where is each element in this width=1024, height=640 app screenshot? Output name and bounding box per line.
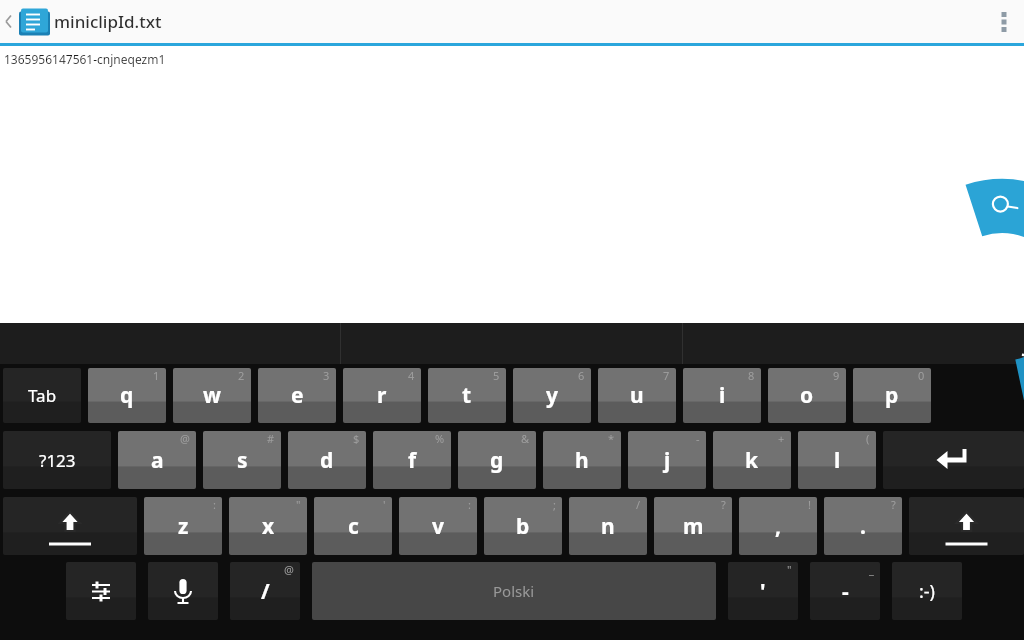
button[interactable]: 0 [853,368,931,423]
staticText: : [213,497,216,512]
staticText: m [683,512,704,541]
button[interactable]: ? [654,497,732,555]
button[interactable] [683,323,1024,364]
button[interactable]: Polski [312,562,716,620]
staticText: i [719,381,726,410]
button[interactable]: ' [314,497,392,555]
button[interactable]: : [399,497,477,555]
button[interactable]: 1 [88,368,166,423]
staticText: @ [284,562,294,577]
button[interactable]: Keyboard settings [66,562,136,620]
staticText: 1365956147561-cnjneqezm1 [4,51,166,67]
staticText: z [178,512,189,541]
staticText: " [787,562,792,577]
staticText: ? [721,497,726,512]
button[interactable]: ? [824,497,902,555]
staticText: :-) [919,579,936,604]
button[interactable]: Tab [3,368,81,423]
button[interactable]: " [229,497,307,555]
staticText: n [601,512,615,541]
button[interactable]: 6 [513,368,591,423]
staticText: $ [353,431,360,446]
staticText: c [348,512,359,541]
button[interactable]: : [144,497,222,555]
button[interactable]: 8 [683,368,761,423]
button[interactable]: 4 [343,368,421,423]
staticText: & [521,431,530,446]
staticText: + [778,431,785,446]
button[interactable]: ( [798,431,876,489]
staticText: . [860,512,866,541]
button[interactable]: 2 [173,368,251,423]
staticText: g [490,446,504,475]
staticText: j [664,446,671,475]
staticText: o [800,381,814,410]
button[interactable]: ?123 [3,431,111,489]
staticText: 0 [918,368,925,383]
button[interactable]: ; [484,497,562,555]
button[interactable]: Voice input [148,562,218,620]
button[interactable]: ! [739,497,817,555]
staticText: d [320,446,334,475]
button[interactable]: Enter [883,431,1024,489]
staticText: Tab [28,384,57,407]
staticText: miniclipId.txt [54,10,162,33]
staticText: r [377,381,387,410]
button[interactable]: More options [984,0,1024,43]
staticText: l [834,446,841,475]
staticText: k [745,446,759,475]
staticText: y [546,381,558,410]
button[interactable]: 9 [768,368,846,423]
staticText: h [575,446,589,475]
button[interactable]: @ [118,431,196,489]
button[interactable]: Navigate up [0,0,54,43]
staticText: ! [808,497,811,512]
button[interactable]: _ [810,562,880,620]
staticText: ' [383,497,386,512]
button[interactable]: 5 [428,368,506,423]
staticText: # [267,431,275,446]
button[interactable]: " [728,562,798,620]
staticText: @ [180,431,190,446]
staticText: ? [891,497,896,512]
staticText: ?123 [39,449,76,472]
button[interactable]: 7 [598,368,676,423]
staticText: t [462,381,472,410]
button[interactable]: * [543,431,621,489]
staticText: f [408,446,417,475]
staticText: ' [760,577,766,606]
button[interactable]: Shift [909,497,1024,555]
staticText: ; [553,497,556,512]
staticText: u [630,381,644,410]
staticText: Polski [493,581,535,601]
staticText: 6 [578,368,585,383]
staticText: s [237,446,248,475]
button[interactable]: # [203,431,281,489]
staticText: 7 [663,368,670,383]
staticText: 2 [238,368,245,383]
staticText: / [636,497,641,512]
staticText: 3 [323,368,330,383]
button[interactable]: - [628,431,706,489]
button[interactable]: % [373,431,451,489]
button[interactable]: :-) [892,562,962,620]
staticText: v [432,512,444,541]
button[interactable]: Shift [3,497,137,555]
staticText: 4 [408,368,415,383]
staticText: " [296,497,301,512]
button[interactable]: & [458,431,536,489]
staticText: * [608,431,615,446]
button[interactable]: $ [288,431,366,489]
staticText: _ [869,562,874,577]
button[interactable]: / [569,497,647,555]
staticText: - [696,431,700,446]
button[interactable]: + [713,431,791,489]
staticText: / [261,577,270,606]
button[interactable]: @ [230,562,300,620]
other: Radial clipboard menu [0,0,1024,640]
button[interactable]: 3 [258,368,336,423]
staticText: % [435,431,445,446]
staticText: w [203,381,221,410]
